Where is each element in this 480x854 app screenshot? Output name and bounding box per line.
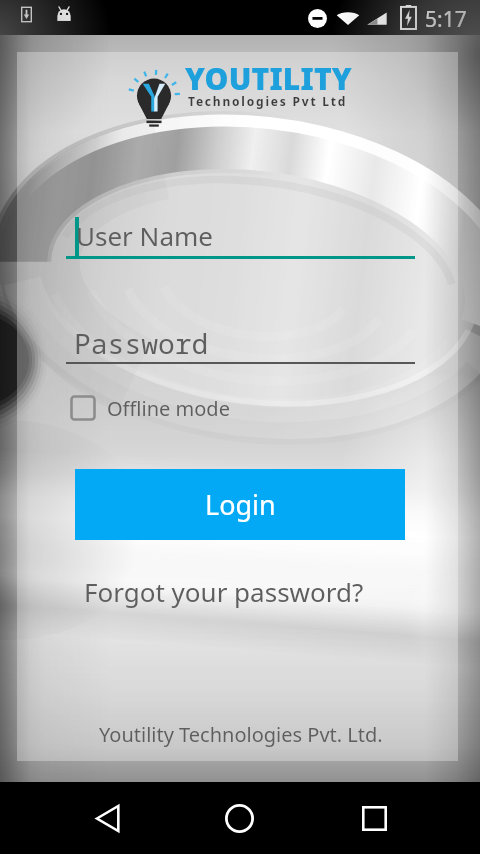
staticText: Forgot your password? [84,574,364,609]
staticText: Login [205,486,276,523]
staticText: User Name [76,218,213,253]
staticText: YOUTILITY [185,58,352,99]
button[interactable]: Login [75,469,405,540]
button[interactable]: Back [78,788,138,848]
staticText: Offline mode [107,395,230,422]
button[interactable]: Recent apps [344,788,404,848]
staticText: Youtility Technologies Pvt. Ltd. [99,721,383,748]
button[interactable]: Home [209,788,269,848]
button[interactable]: Forgot your password? [74,571,374,611]
staticText: Technologies Pvt Ltd [188,93,348,109]
staticText: Password [74,324,209,362]
button[interactable]: Offline mode [70,392,230,424]
staticText: 5:17 [425,5,467,34]
